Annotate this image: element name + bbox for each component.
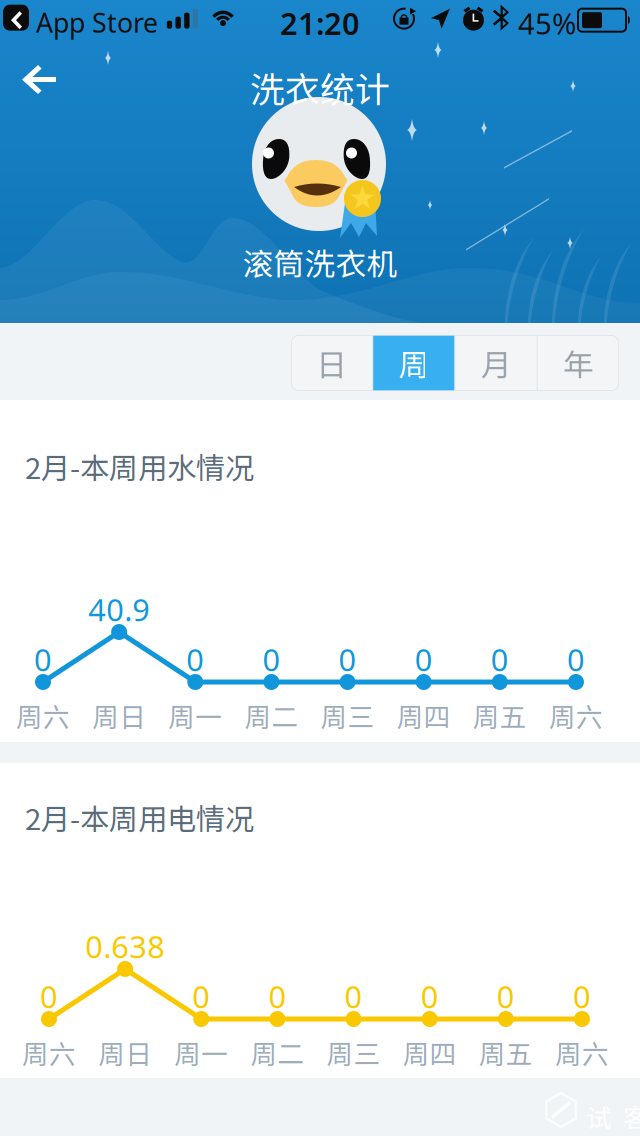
button[interactable]: 周 xyxy=(373,335,454,391)
staticText: 2月-本周用电情况 xyxy=(25,796,254,838)
button[interactable]: 返回 App Store xyxy=(3,5,29,31)
button[interactable]: 日 xyxy=(291,335,372,391)
staticText: 0 xyxy=(345,976,363,1017)
staticText: 21:20 xyxy=(280,3,360,43)
staticText: 45% xyxy=(518,4,576,43)
staticText: 0 xyxy=(339,639,357,680)
staticText: 周一 xyxy=(174,1033,228,1072)
button[interactable]: 年 xyxy=(538,335,619,391)
staticText: 0 xyxy=(567,639,585,680)
staticText: 0 xyxy=(497,976,515,1017)
staticText: 周六 xyxy=(555,1033,609,1072)
staticText: App Store xyxy=(36,5,158,40)
staticText: 0 xyxy=(268,976,286,1017)
staticText: 周三 xyxy=(321,696,375,735)
staticText: 年 xyxy=(563,341,594,385)
staticText: 0 xyxy=(491,639,509,680)
button[interactable]: 月 xyxy=(455,335,537,391)
staticText: 试 客 xyxy=(586,1098,640,1135)
staticText: 周日 xyxy=(98,1033,152,1072)
staticText: 月 xyxy=(481,341,512,385)
staticText: 周三 xyxy=(327,1033,381,1072)
staticText: 0 xyxy=(573,976,591,1017)
staticText: 洗衣统计 xyxy=(250,62,390,112)
button[interactable]: 返回 xyxy=(12,56,92,112)
staticText: 40.9 xyxy=(88,589,150,630)
staticText: 周六 xyxy=(16,696,70,735)
staticText: 周日 xyxy=(92,696,146,735)
staticText: 周四 xyxy=(397,696,451,735)
staticText: 周 xyxy=(398,341,429,385)
staticText: 0 xyxy=(192,976,210,1017)
staticText: 滚筒洗衣机 xyxy=(242,240,397,284)
staticText: 周六 xyxy=(549,696,603,735)
staticText: 周五 xyxy=(479,1033,533,1072)
staticText: 0 xyxy=(40,976,58,1017)
staticText: 0 xyxy=(186,639,204,680)
staticText: 周一 xyxy=(168,696,222,735)
staticText: 0 xyxy=(421,976,439,1017)
staticText: 周五 xyxy=(473,696,527,735)
staticText: 0 xyxy=(34,639,52,680)
staticText: 周六 xyxy=(22,1033,76,1072)
staticText: 0 xyxy=(415,639,433,680)
staticText: 日 xyxy=(316,341,347,385)
staticText: 周四 xyxy=(403,1033,457,1072)
staticText: 0.638 xyxy=(85,926,165,967)
staticText: 0 xyxy=(262,639,280,680)
staticText: 周二 xyxy=(244,696,298,735)
staticText: 周二 xyxy=(250,1033,304,1072)
staticText: 2月-本周用水情况 xyxy=(25,445,254,487)
